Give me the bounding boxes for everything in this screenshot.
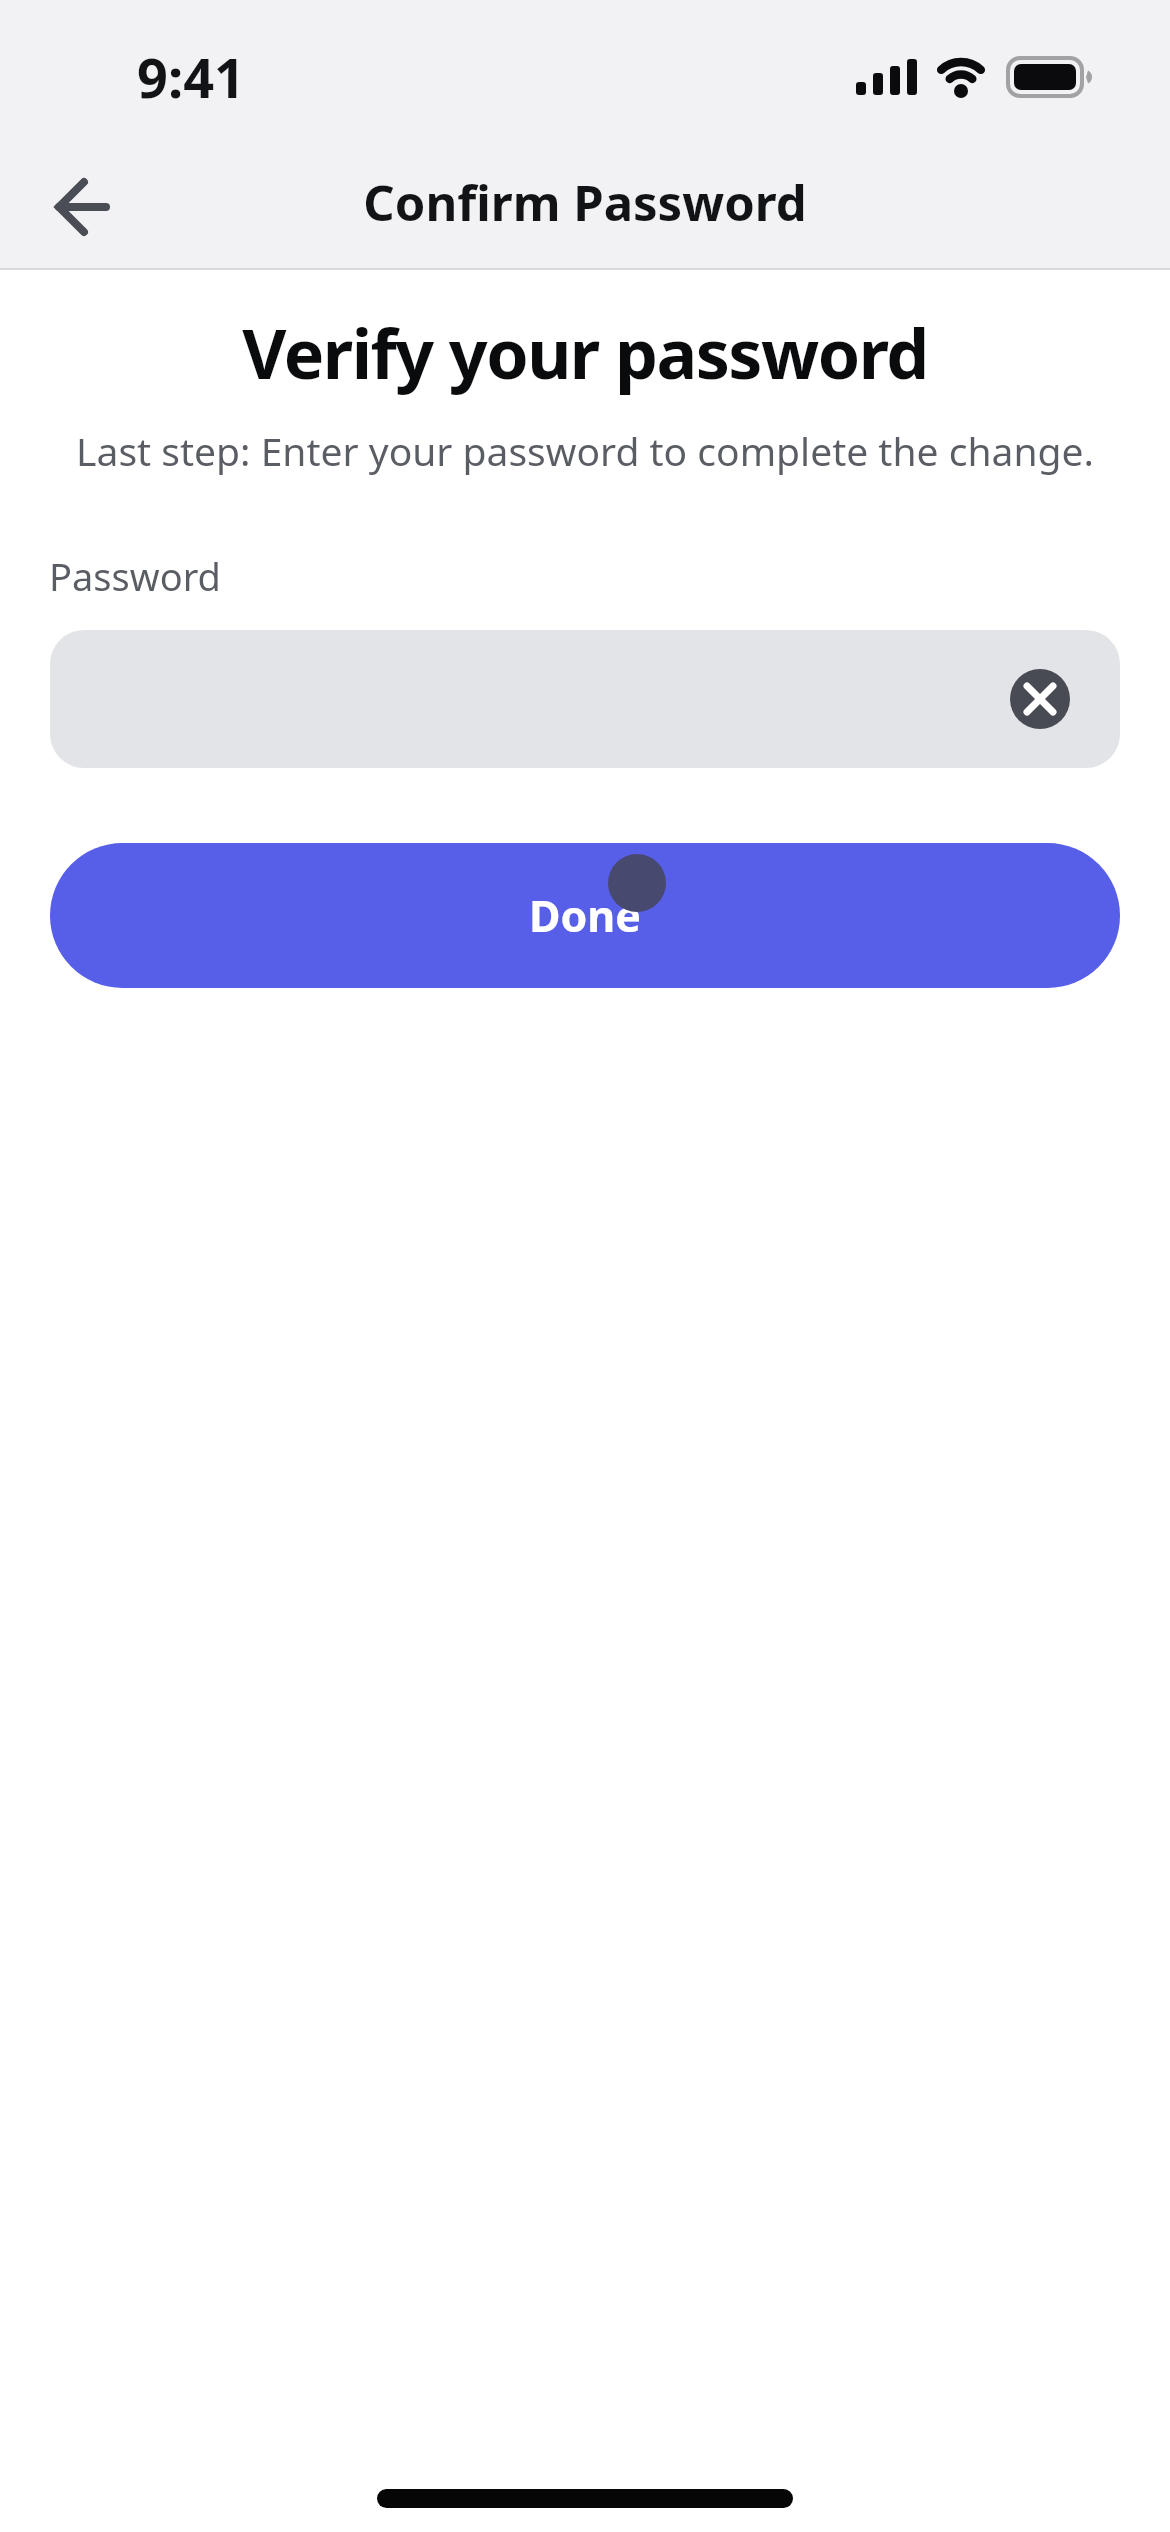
button[interactable] — [36, 162, 132, 252]
staticText: Verify your password — [242, 306, 928, 399]
button[interactable] — [50, 630, 1120, 768]
staticText: Password — [49, 550, 221, 600]
button[interactable] — [1010, 669, 1070, 729]
staticText: Last step: Enter your password to comple… — [76, 424, 1094, 477]
button[interactable]: Done — [50, 843, 1120, 988]
staticText: Confirm Password — [363, 169, 807, 236]
staticText: 9:41 — [137, 40, 245, 104]
staticText: Done — [529, 886, 641, 945]
